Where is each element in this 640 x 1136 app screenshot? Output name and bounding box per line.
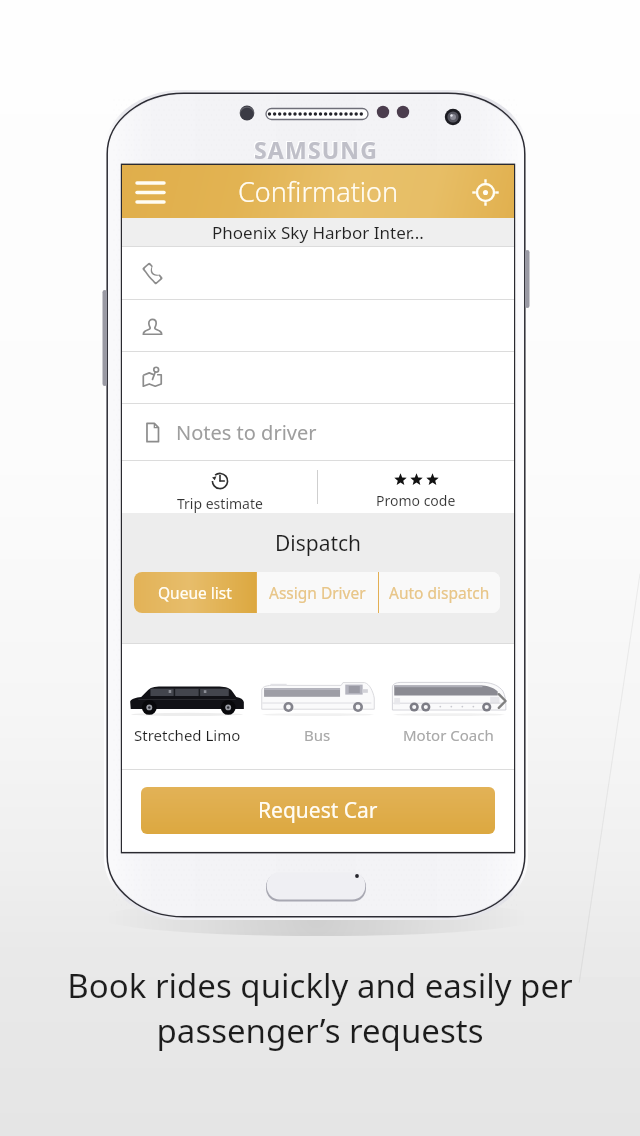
- staticText: Bus: [304, 725, 331, 745]
- staticText: SAMSUNG: [253, 133, 378, 164]
- button[interactable]: Stretched Limo: [122, 644, 252, 769]
- staticText: Assign Driver: [269, 582, 366, 603]
- button[interactable]: Open navigation menu: [126, 168, 174, 216]
- button[interactable]: Request Car: [141, 787, 495, 834]
- button[interactable]: [122, 352, 514, 403]
- staticText: Auto dispatch: [389, 582, 490, 603]
- staticText: SAMSUNG: [254, 134, 379, 165]
- button[interactable]: Notes to driver: [122, 404, 514, 460]
- staticText: Trip estimate: [177, 494, 263, 513]
- staticText: Stretched Limo: [134, 725, 241, 745]
- button[interactable]: Queue list: [134, 572, 256, 613]
- staticText: Queue list: [158, 582, 232, 603]
- button[interactable]: Promo code: [318, 461, 514, 513]
- staticText: Phoenix Sky Harbor Inter...: [212, 221, 424, 244]
- button[interactable]: Assign Driver: [257, 572, 378, 613]
- staticText: Confirmation: [238, 173, 399, 210]
- staticText: Book rides quickly and easily per passen…: [0, 963, 640, 1053]
- button[interactable]: Motor Coach: [383, 644, 514, 769]
- staticText: Notes to driver: [176, 419, 317, 446]
- button[interactable]: More vehicle types: [490, 689, 514, 713]
- button[interactable]: Auto dispatch: [379, 572, 500, 613]
- button[interactable]: Trip estimate: [122, 461, 317, 513]
- staticText: Request Car: [258, 796, 378, 825]
- staticText: Promo code: [376, 491, 456, 510]
- button[interactable]: My location: [462, 169, 508, 215]
- button[interactable]: [122, 300, 514, 351]
- staticText: Dispatch: [122, 529, 514, 558]
- button[interactable]: Phoenix Sky Harbor Inter...: [122, 218, 514, 246]
- button[interactable]: Bus: [252, 644, 383, 769]
- button[interactable]: [122, 247, 514, 299]
- staticText: Motor Coach: [403, 725, 494, 745]
